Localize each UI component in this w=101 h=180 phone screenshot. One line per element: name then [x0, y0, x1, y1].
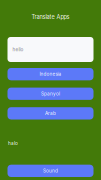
staticText: Arab — [45, 110, 56, 116]
staticText: hello — [12, 47, 23, 52]
staticText: halo — [8, 140, 18, 146]
staticText: Translate Apps — [31, 14, 69, 20]
button[interactable]: Sound — [7, 165, 93, 177]
button[interactable]: Arab — [7, 107, 93, 119]
button[interactable]: Spanyol — [7, 88, 93, 100]
staticText: Indonesia — [39, 71, 61, 77]
staticText: Spanyol — [41, 91, 60, 96]
button[interactable]: Indonesia — [7, 68, 93, 80]
staticText: Sound — [43, 168, 58, 174]
